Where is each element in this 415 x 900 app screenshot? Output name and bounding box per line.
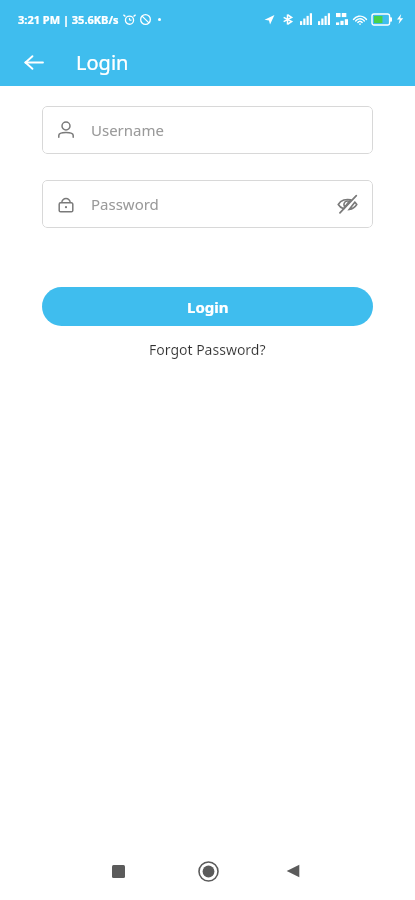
button[interactable]: Back: [14, 43, 52, 81]
button[interactable]: Forgot Password?: [0, 340, 415, 359]
staticText: 3:21 PM | 35.6KB/s: [18, 12, 119, 27]
staticText: Login: [76, 49, 129, 76]
button[interactable]: Back: [271, 849, 315, 893]
staticText: Username: [91, 120, 359, 140]
button[interactable]: Recent apps: [96, 849, 140, 893]
button[interactable]: Password: [42, 180, 373, 228]
button[interactable]: Home: [186, 849, 230, 893]
button[interactable]: Login: [42, 287, 373, 326]
staticText: Login: [187, 297, 229, 317]
staticText: Password: [91, 194, 335, 214]
button[interactable]: Show password: [335, 192, 359, 216]
button[interactable]: Username: [42, 106, 373, 154]
staticText: Forgot Password?: [149, 340, 266, 359]
